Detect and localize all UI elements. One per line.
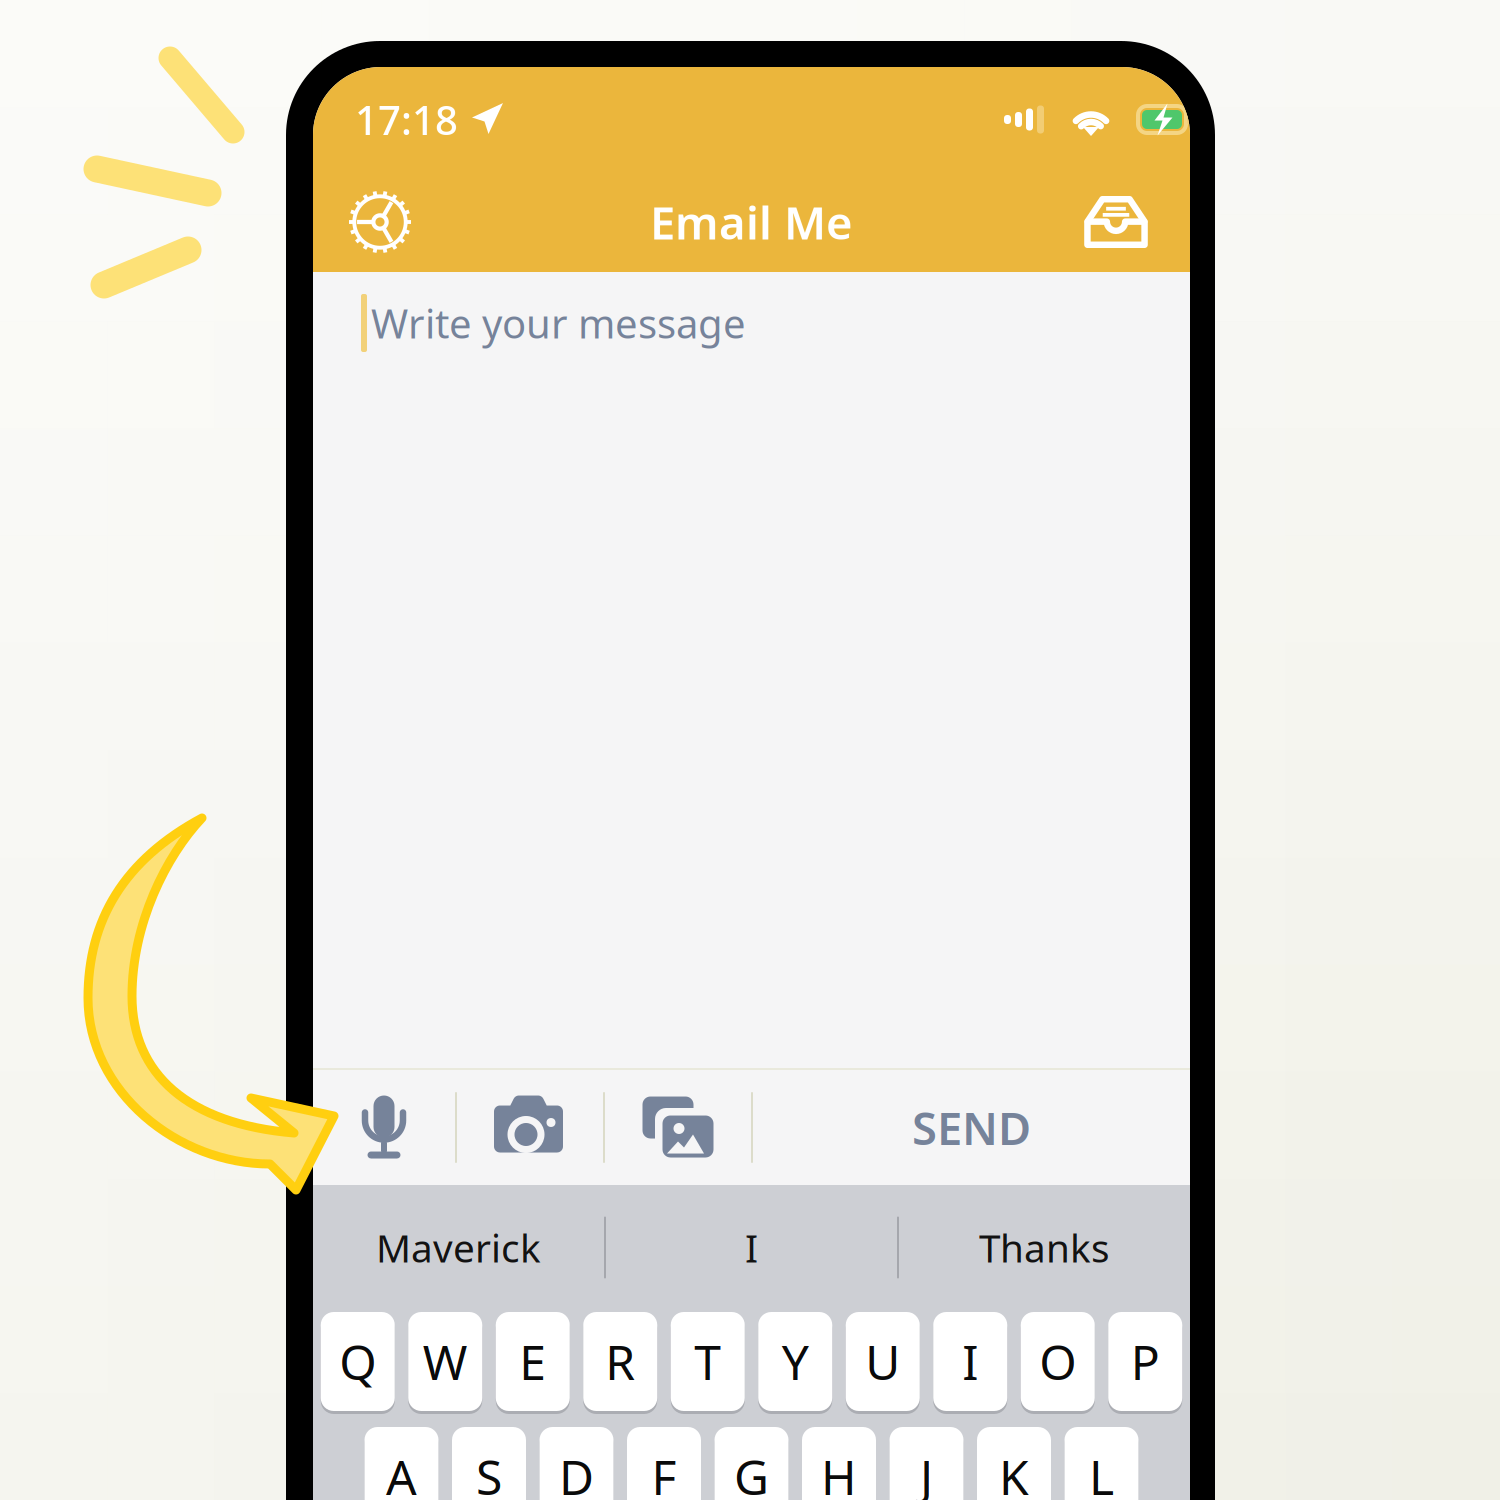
staticText: SEND [912,1097,1031,1158]
staticText: Thanks [979,1222,1110,1273]
button[interactable]: Choose photo [605,1070,751,1185]
button[interactable]: Inbox [1068,174,1164,270]
button[interactable]: Q [321,1310,395,1413]
button[interactable]: T [671,1310,745,1413]
button[interactable]: Take photo [457,1070,603,1185]
staticText: E [519,1330,546,1393]
staticText: R [605,1330,635,1393]
button[interactable]: U [846,1310,920,1413]
staticText: K [999,1445,1029,1500]
button[interactable]: I [606,1185,897,1310]
button[interactable]: SEND [753,1070,1190,1185]
staticText: J [920,1445,933,1500]
staticText: I [962,1330,978,1393]
staticText: F [651,1445,676,1500]
button[interactable]: P [1108,1310,1182,1413]
staticText: J [920,1445,933,1500]
staticText: D [559,1445,594,1500]
button[interactable]: I [933,1310,1007,1413]
button[interactable]: H [802,1425,876,1500]
button[interactable]: I [933,1310,1007,1413]
staticText: H [821,1445,857,1500]
button[interactable]: Y [758,1310,832,1413]
button[interactable]: I [606,1185,897,1310]
button[interactable]: Maverick [313,1185,604,1310]
button[interactable]: P [1108,1310,1182,1413]
button[interactable]: A [364,1425,438,1500]
button[interactable]: Choose photo [605,1070,751,1185]
button[interactable]: G [714,1425,788,1500]
staticText: H [821,1445,857,1500]
button[interactable]: S [452,1425,526,1500]
button[interactable]: K [977,1425,1051,1500]
button[interactable]: H [802,1425,876,1500]
button[interactable]: L [1064,1425,1138,1500]
staticText: P [1131,1330,1160,1393]
staticText: S [476,1445,502,1500]
button[interactable]: Inbox [1068,174,1164,270]
button[interactable]: E [496,1310,570,1413]
staticText: SEND [912,1097,1031,1158]
staticText: Y [782,1330,809,1393]
staticText: L [1089,1445,1114,1500]
button[interactable]: J [889,1425,963,1500]
staticText: U [865,1330,900,1393]
staticText: I [745,1222,758,1273]
button[interactable]: R [583,1310,657,1413]
button[interactable]: G [714,1425,788,1500]
button[interactable]: T [671,1310,745,1413]
button[interactable]: F [627,1425,701,1500]
button[interactable]: K [977,1425,1051,1500]
button[interactable]: Record voice message [313,1070,455,1185]
staticText: Email Me [650,192,853,252]
staticText: G [734,1445,769,1500]
staticText: D [559,1445,594,1500]
button[interactable]: Settings [332,174,428,270]
button[interactable]: D [539,1425,613,1500]
button[interactable]: Record voice message [313,1070,455,1185]
button[interactable]: Take photo [457,1070,603,1185]
staticText: Q [339,1330,376,1393]
staticText: Email Me [650,192,853,252]
staticText: Maverick [376,1222,541,1273]
button[interactable]: F [627,1425,701,1500]
button[interactable]: S [452,1425,526,1500]
staticText: S [476,1445,502,1500]
button[interactable]: L [1064,1425,1138,1500]
staticText: U [865,1330,900,1393]
button[interactable]: W [408,1310,482,1413]
button[interactable]: Maverick [313,1185,604,1310]
staticText: Maverick [376,1222,541,1273]
button[interactable]: SEND [753,1070,1190,1185]
staticText: L [1089,1445,1114,1500]
button[interactable]: D [539,1425,613,1500]
staticText: T [694,1330,721,1393]
staticText: W [423,1330,468,1393]
button[interactable]: Settings [332,174,428,270]
staticText: F [651,1445,676,1500]
staticText: W [423,1330,468,1393]
staticText: R [605,1330,635,1393]
staticText: A [386,1445,417,1500]
staticText: 17:18 [355,93,458,146]
button[interactable]: O [1021,1310,1095,1413]
staticText: I [962,1330,978,1393]
button[interactable]: Thanks [899,1185,1190,1310]
staticText: Q [339,1330,376,1393]
button[interactable]: A [364,1425,438,1500]
staticText: Y [782,1330,809,1393]
button[interactable]: J [889,1425,963,1500]
button[interactable]: U [846,1310,920,1413]
button[interactable]: Q [321,1310,395,1413]
button[interactable]: Y [758,1310,832,1413]
button[interactable]: W [408,1310,482,1413]
button[interactable]: O [1021,1310,1095,1413]
staticText: O [1039,1330,1076,1393]
button[interactable]: R [583,1310,657,1413]
button[interactable]: E [496,1310,570,1413]
staticText: T [694,1330,721,1393]
staticText: G [734,1445,769,1500]
staticText: I [745,1222,758,1273]
staticText: 17:18 [355,93,458,146]
button[interactable]: Thanks [899,1185,1190,1310]
